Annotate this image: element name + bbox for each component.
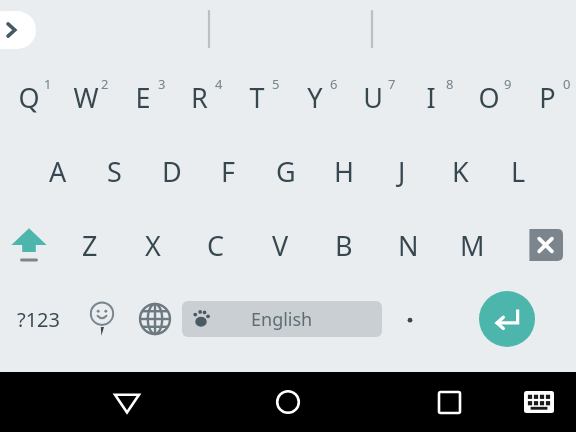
button[interactable]: U (344, 60, 402, 134)
button[interactable]: Shift caps lock (0, 208, 58, 282)
staticText: Z (82, 227, 98, 264)
staticText: 1 (44, 75, 52, 93)
staticText: ?123 (17, 306, 60, 333)
staticText: M (460, 227, 485, 264)
staticText: 4 (215, 75, 223, 93)
button[interactable]: W (57, 60, 114, 134)
button[interactable]: Change language (128, 282, 182, 356)
button[interactable]: D (143, 134, 200, 208)
staticText: N (398, 227, 419, 264)
staticText: O (478, 79, 500, 116)
staticText: P (539, 79, 556, 116)
button[interactable]: N (376, 208, 440, 282)
button[interactable]: B (312, 208, 376, 282)
button[interactable]: G (257, 134, 315, 208)
button[interactable]: F (200, 134, 257, 208)
staticText: G (276, 153, 296, 190)
staticText: 3 (158, 75, 166, 93)
button[interactable]: T (228, 60, 286, 134)
button[interactable]: English (182, 301, 382, 337)
staticText: 0 (563, 75, 571, 93)
staticText: V (272, 227, 289, 264)
staticText: 9 (504, 75, 512, 93)
staticText: B (335, 227, 353, 264)
staticText: R (191, 79, 208, 116)
button[interactable]: O (460, 60, 518, 134)
staticText: F (221, 153, 236, 190)
button[interactable]: Recent apps (422, 375, 476, 429)
button[interactable]: Q (0, 60, 57, 134)
staticText: 7 (388, 75, 396, 93)
button[interactable]: P (518, 60, 576, 134)
button[interactable]: H (315, 134, 373, 208)
button[interactable]: Backspace (504, 208, 576, 282)
staticText: U (363, 79, 383, 116)
staticText: English (251, 307, 313, 332)
staticText: W (73, 79, 99, 116)
button[interactable]: Home (261, 375, 315, 429)
staticText: E (135, 79, 151, 116)
staticText: A (49, 153, 67, 190)
staticText: J (398, 153, 406, 190)
staticText: L (511, 153, 526, 190)
staticText: Q (18, 79, 40, 116)
button[interactable]: L (489, 134, 547, 208)
staticText: Y (307, 79, 323, 116)
button[interactable]: E (114, 60, 171, 134)
staticText: K (452, 153, 469, 190)
staticText: D (162, 153, 182, 190)
staticText: T (249, 79, 265, 116)
button[interactable]: Y (286, 60, 344, 134)
button[interactable]: S (86, 134, 143, 208)
button[interactable]: Switch keyboard (516, 379, 562, 425)
staticText: 8 (446, 75, 454, 93)
staticText: H (334, 153, 355, 190)
button[interactable]: I (402, 60, 460, 134)
button[interactable]: Enter (479, 291, 535, 347)
button[interactable]: ?123 (0, 282, 76, 356)
staticText: C (207, 227, 225, 264)
button[interactable]: Z (58, 208, 121, 282)
button[interactable]: Expand suggestions (0, 11, 36, 49)
button[interactable]: C (184, 208, 248, 282)
staticText: S (107, 153, 122, 190)
button[interactable]: X (121, 208, 184, 282)
button[interactable]: Emoji (76, 282, 128, 356)
staticText: X (145, 227, 161, 264)
button[interactable]: V (248, 208, 312, 282)
button[interactable]: R (171, 60, 228, 134)
button[interactable]: K (431, 134, 489, 208)
staticText: I (426, 79, 436, 116)
staticText: 5 (272, 75, 280, 93)
button[interactable] (382, 282, 438, 356)
button[interactable]: A (29, 134, 86, 208)
button[interactable]: J (373, 134, 431, 208)
staticText: 6 (330, 75, 338, 93)
staticText: 2 (101, 75, 109, 93)
button[interactable]: Back (100, 375, 154, 429)
button[interactable]: M (440, 208, 504, 282)
